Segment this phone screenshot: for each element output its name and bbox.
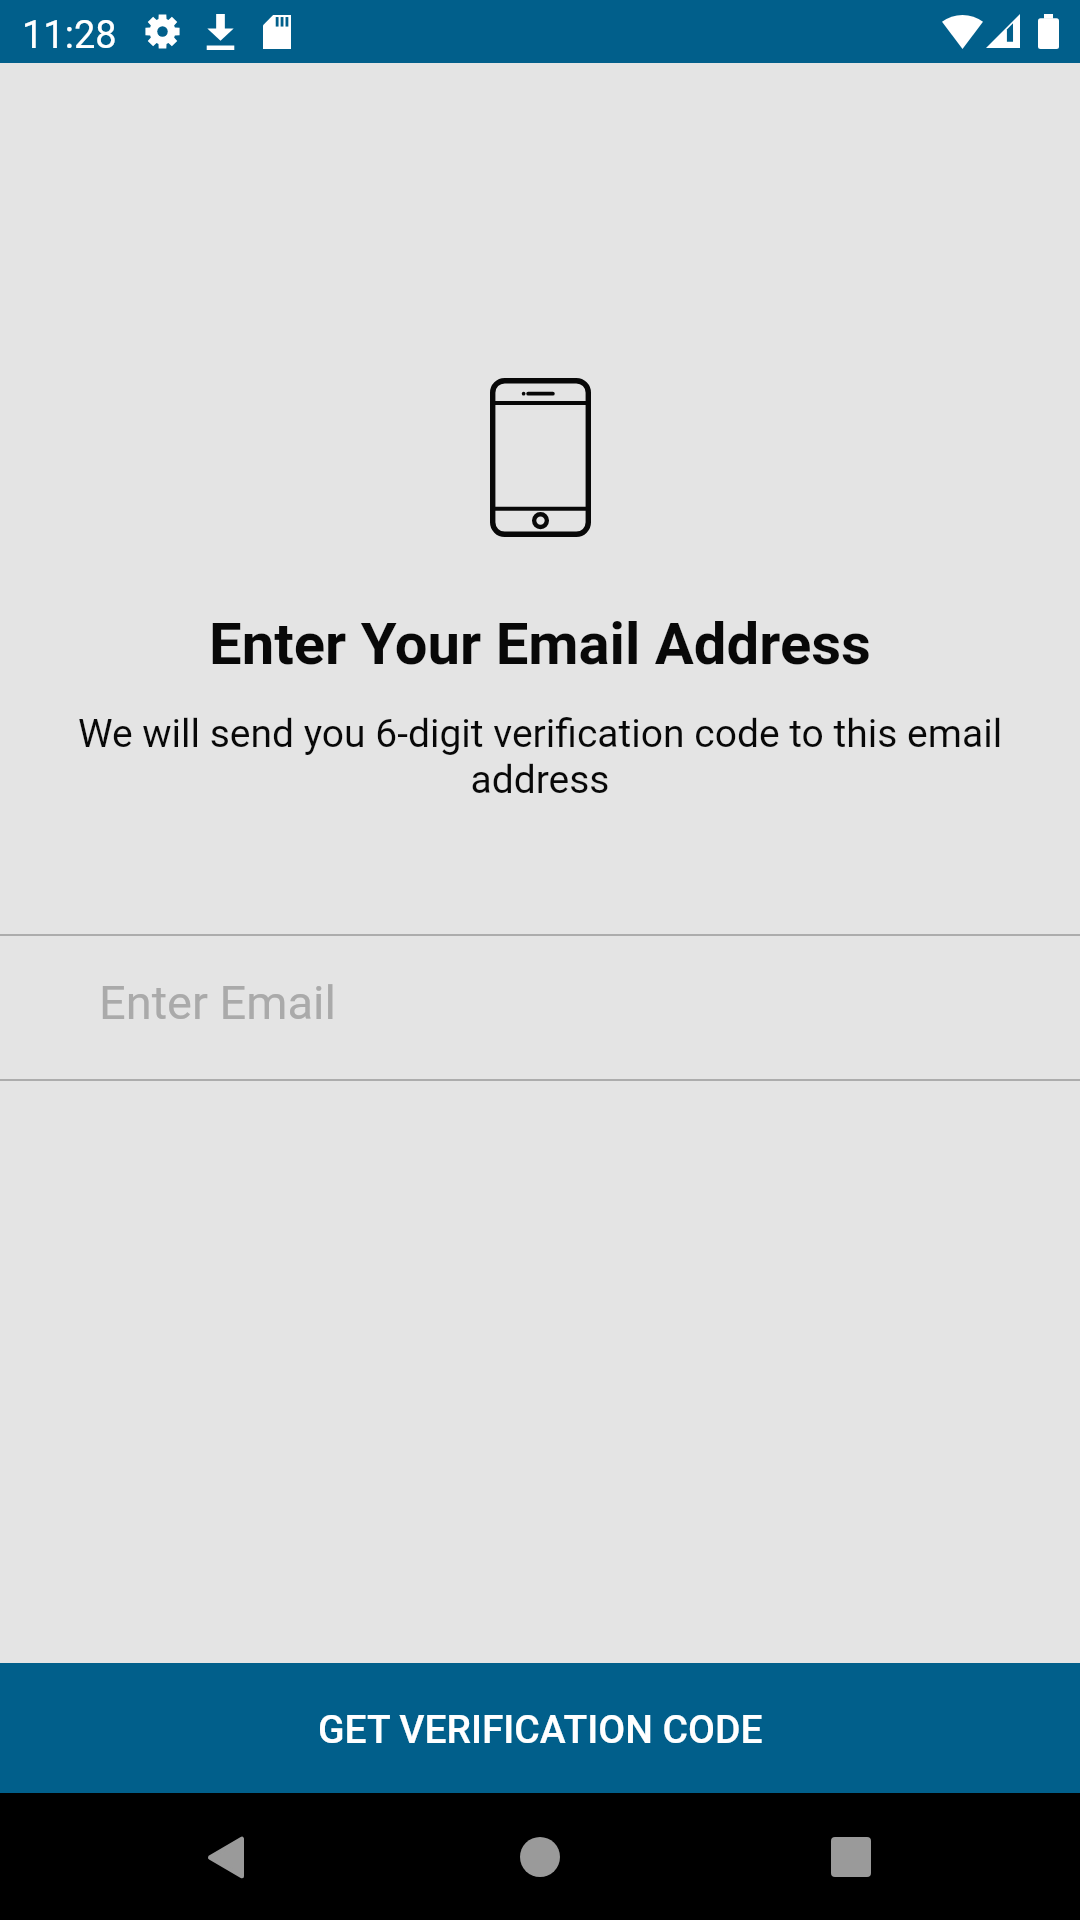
button[interactable]: Recent apps	[801, 1807, 901, 1907]
staticText: Enter Email	[99, 975, 336, 1030]
button[interactable]: GET VERIFICATION CODE	[0, 1663, 1080, 1793]
staticText: We will send you 6-digit verification co…	[60, 711, 1020, 803]
staticText: 11:28	[22, 13, 117, 58]
button[interactable]: Home	[490, 1807, 590, 1907]
button[interactable]: Back	[175, 1807, 275, 1907]
button[interactable]: Enter Email	[0, 936, 1080, 1079]
staticText: GET VERIFICATION CODE	[318, 1707, 763, 1753]
staticText: Enter Your Email Address	[0, 610, 1080, 678]
